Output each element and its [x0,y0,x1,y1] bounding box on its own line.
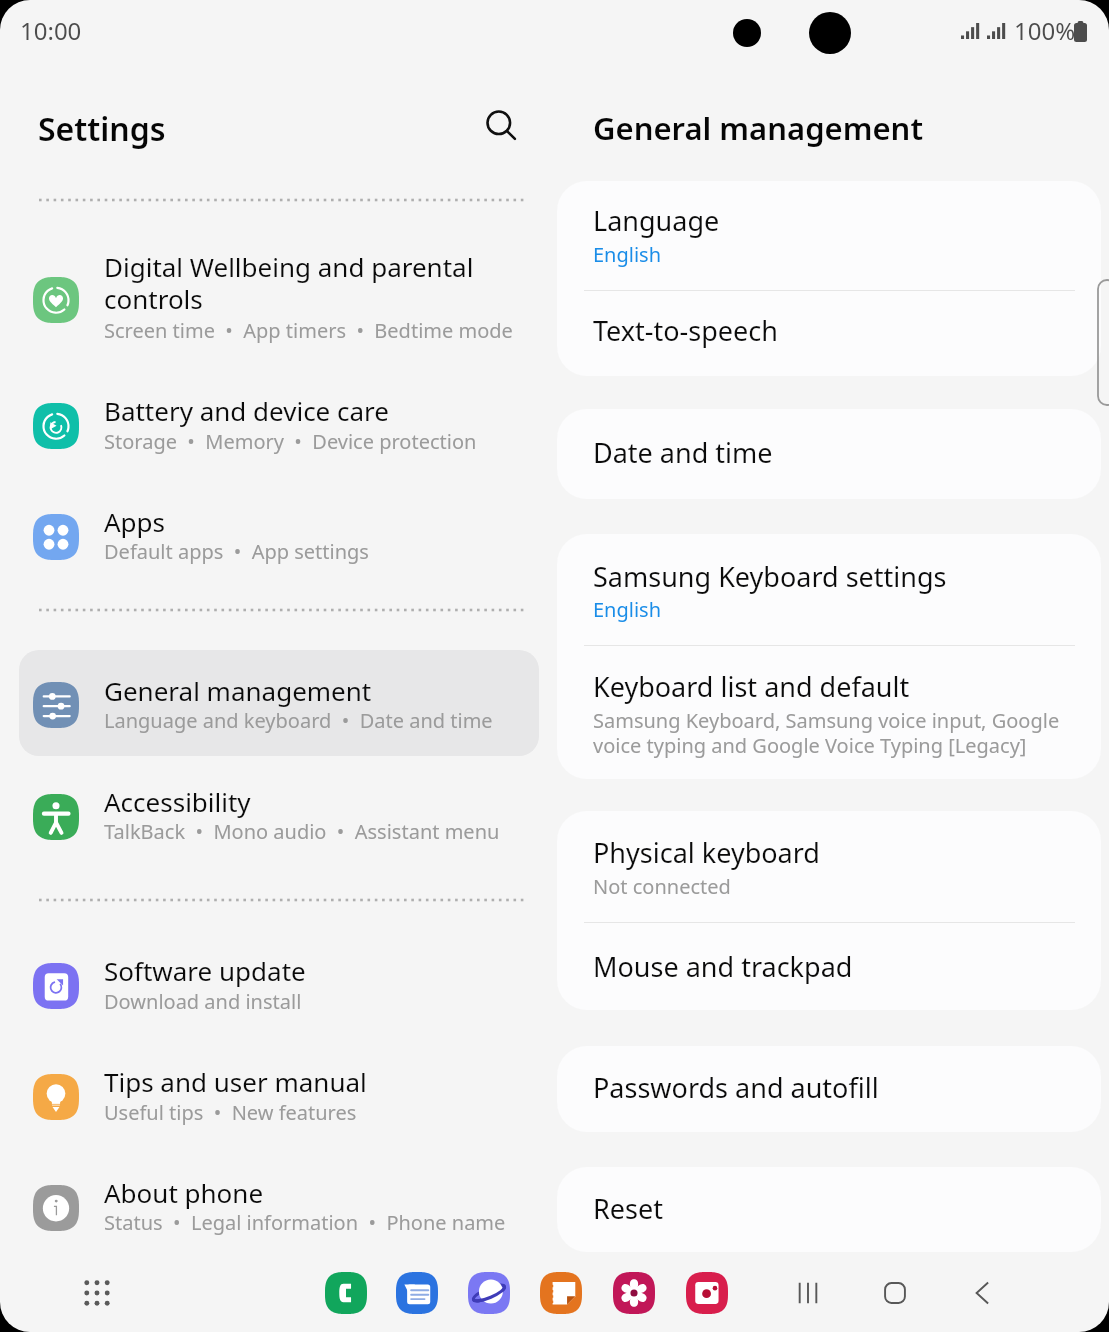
staticText: Battery and device care [104,393,539,428]
button[interactable] [557,1167,1101,1252]
staticText: Default apps • App settings [104,538,539,565]
staticText: 10:00 [20,14,82,47]
staticText: English [593,596,1063,623]
staticText: Software update [104,953,539,988]
button[interactable]: Battery and device care [19,378,539,474]
button[interactable]: internet [468,1272,510,1314]
staticText: Digital Wellbeing and parental controls [104,249,539,317]
staticText: Keyboard list and default [593,668,910,705]
staticText: Language [593,202,720,239]
button[interactable] [557,811,1101,922]
button[interactable]: Digital Wellbeing and parental controls [19,240,539,366]
button[interactable]: notes [540,1272,582,1314]
button[interactable]: gallery [613,1272,655,1314]
staticText: Status • Legal information • Phone name [104,1209,539,1236]
staticText: Apps [104,504,539,539]
button[interactable]: Recent apps [781,1266,835,1320]
button[interactable]: General management [19,650,539,756]
button[interactable]: camera [686,1272,728,1314]
button[interactable]: Apps [19,489,539,585]
button[interactable]: About phone [19,1160,539,1256]
button[interactable] [557,923,1101,1010]
staticText: Reset [593,1190,663,1227]
staticText: Physical keyboard [593,834,820,871]
staticText: Passwords and autofill [593,1069,879,1106]
staticText: TalkBack • Mono audio • Assistant menu [104,818,539,845]
staticText: Text-to-speech [593,312,778,349]
staticText: Tips and user manual [104,1064,539,1099]
staticText: English [593,241,1063,268]
staticText: Download and install [104,988,539,1015]
staticText: About phone [104,1175,539,1210]
button[interactable] [557,409,1101,499]
staticText: Date and time [593,434,773,471]
button[interactable] [557,646,1101,779]
staticText: General management [593,107,923,149]
button[interactable]: phone [325,1272,367,1314]
staticText: Not connected [593,873,1063,900]
button[interactable]: Search [474,98,528,152]
button[interactable]: messages [396,1272,438,1314]
button[interactable] [557,279,1101,376]
staticText: Storage • Memory • Device protection [104,428,539,455]
button[interactable]: Back [956,1266,1010,1320]
staticText: General management [104,673,539,708]
staticText: Settings [38,107,166,151]
staticText: Mouse and trackpad [593,948,853,985]
button[interactable]: Home [868,1266,922,1320]
button[interactable]: Software update [19,938,539,1034]
staticText: Samsung Keyboard settings [593,558,947,595]
staticText: 100% [1014,14,1076,47]
button[interactable] [557,1046,1101,1132]
staticText: Screen time • App timers • Bedtime mode [104,317,539,344]
button[interactable]: All apps [73,1269,121,1317]
staticText: Accessibility [104,784,539,819]
staticText: Samsung Keyboard, Samsung voice input, G… [593,707,1063,759]
button[interactable]: Tips and user manual [19,1049,539,1145]
staticText: Useful tips • New features [104,1099,539,1126]
button[interactable]: Accessibility [19,769,539,865]
staticText: Language and keyboard • Date and time [104,707,539,734]
button[interactable] [557,534,1101,645]
button[interactable] [557,181,1101,278]
